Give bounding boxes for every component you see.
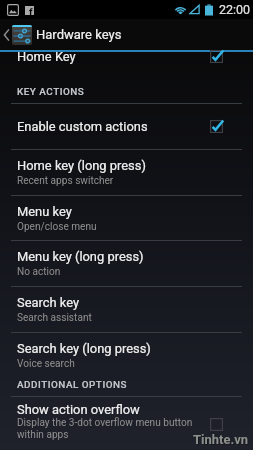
staticText: Search key (17, 295, 80, 310)
other: Navigate up (3, 28, 10, 42)
staticText: Enable custom actions (17, 119, 148, 134)
staticText: Recent apps switcher (17, 175, 114, 187)
button[interactable]: Show action overflow (0, 397, 253, 445)
staticText: Search assistant (17, 312, 92, 324)
button[interactable]: Search key (long press) (0, 333, 253, 378)
button[interactable]: Navigate up (0, 19, 253, 50)
staticText: Menu key (17, 204, 72, 219)
staticText: ADDITIONAL OPTIONS (17, 379, 128, 391)
button[interactable]: Home Key (0, 44, 253, 68)
staticText: KEY ACTIONS (17, 86, 85, 98)
staticText: Display the 3-dot overflow menu button w… (17, 417, 193, 441)
staticText: 22:00 (219, 2, 251, 17)
staticText: Show action overflow (17, 402, 140, 417)
staticText: Home key (long press) (17, 158, 146, 173)
button[interactable]: Enable custom actions (0, 104, 253, 149)
button[interactable]: Menu key (long press) (0, 241, 253, 286)
staticText: Tinhte.vn (193, 432, 249, 447)
button[interactable]: Menu key (0, 196, 253, 240)
staticText: Home Key (17, 49, 210, 64)
button[interactable]: Search key (0, 287, 253, 332)
staticText: Tinhte.vn (194, 433, 250, 448)
staticText: Search key (long press) (17, 341, 151, 356)
button[interactable]: Home key (long press) (0, 150, 253, 195)
staticText: Open/close menu (17, 221, 97, 233)
staticText: Hardware keys (36, 27, 122, 42)
staticText: Voice search (17, 358, 75, 370)
staticText: f (29, 7, 33, 16)
staticText: No action (17, 266, 61, 278)
staticText: Menu key (long press) (17, 249, 144, 264)
